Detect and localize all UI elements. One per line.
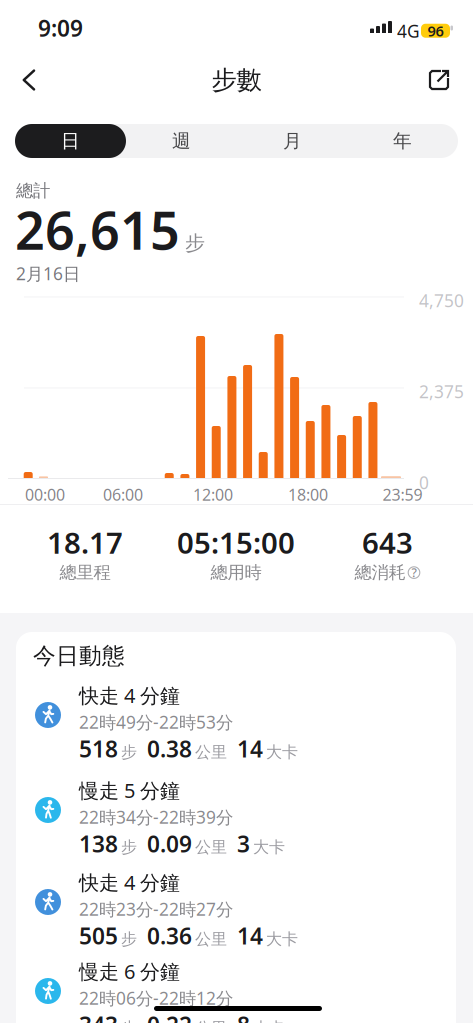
staticText: 總里程 bbox=[59, 562, 110, 583]
staticText: 步數 bbox=[211, 64, 261, 96]
staticText: 大卡 bbox=[253, 837, 285, 857]
staticText: 05:15:00 bbox=[177, 523, 295, 562]
button[interactable]: 月 bbox=[237, 124, 348, 158]
staticText: 22時06分-22時12分 bbox=[79, 987, 233, 1010]
staticText: 週 bbox=[172, 129, 191, 152]
staticText: 26,615 bbox=[15, 195, 180, 264]
button[interactable]: 慢走 5 分鐘 bbox=[35, 775, 459, 859]
staticText: 14 bbox=[237, 921, 263, 951]
staticText: 總用時 bbox=[210, 562, 261, 583]
staticText: 慢走 5 分鐘 bbox=[79, 777, 180, 804]
button[interactable]: 快走 4 分鐘 bbox=[35, 867, 459, 951]
staticText: 快走 4 分鐘 bbox=[79, 869, 180, 896]
staticText: 步 bbox=[121, 929, 137, 949]
staticText: 06:00 bbox=[103, 484, 143, 505]
staticText: 0.09 bbox=[147, 829, 192, 859]
staticText: 2,375 bbox=[419, 380, 464, 403]
staticText: 步 bbox=[121, 1018, 137, 1023]
staticText: 今日動態 bbox=[33, 642, 125, 670]
staticText: 138 bbox=[79, 829, 118, 859]
staticText: 14 bbox=[237, 734, 263, 764]
button[interactable]: 返回 bbox=[0, 60, 56, 100]
staticText: 0 bbox=[419, 471, 429, 494]
staticText: 96 bbox=[427, 21, 443, 40]
staticText: 2月16日 bbox=[16, 262, 80, 285]
staticText: 月 bbox=[283, 129, 302, 152]
staticText: 0.36 bbox=[147, 921, 192, 951]
button[interactable]: 快走 4 分鐘 bbox=[35, 680, 459, 764]
staticText: 步 bbox=[121, 742, 137, 762]
staticText: 518 bbox=[79, 734, 118, 764]
staticText: 年 bbox=[393, 129, 412, 152]
staticText: 22時49分-22時53分 bbox=[79, 711, 233, 734]
staticText: 公里 bbox=[195, 742, 227, 762]
staticText: 12:00 bbox=[193, 484, 233, 505]
staticText: 22時23分-22時27分 bbox=[79, 898, 233, 921]
staticText: 643 bbox=[362, 523, 413, 562]
staticText: 0.38 bbox=[147, 734, 192, 764]
staticText: 總消耗 bbox=[354, 562, 405, 583]
staticText: ? bbox=[411, 565, 416, 580]
staticText: 大卡 bbox=[266, 742, 298, 762]
staticText: 8 bbox=[237, 1010, 250, 1023]
staticText: 4,750 bbox=[419, 289, 464, 312]
staticText: 9:09 bbox=[38, 13, 83, 43]
button[interactable]: 慢走 6 分鐘 bbox=[35, 956, 459, 1023]
button[interactable]: 週 bbox=[126, 124, 237, 158]
staticText: 0.22 bbox=[147, 1010, 192, 1023]
button[interactable]: 日 bbox=[15, 124, 126, 158]
staticText: 總計 bbox=[16, 180, 50, 201]
staticText: 18:00 bbox=[288, 484, 328, 505]
staticText: 步 bbox=[121, 837, 137, 857]
staticText: 18.17 bbox=[47, 523, 123, 562]
staticText: 3 bbox=[237, 829, 250, 859]
staticText: 公里 bbox=[195, 929, 227, 949]
staticText: 公里 bbox=[195, 837, 227, 857]
button[interactable]: 分享 bbox=[419, 60, 459, 100]
staticText: 慢走 6 分鐘 bbox=[79, 958, 180, 985]
staticText: 22時34分-22時39分 bbox=[79, 806, 233, 829]
staticText: 00:00 bbox=[25, 484, 65, 505]
staticText: 大卡 bbox=[253, 1018, 285, 1023]
staticText: 快走 4 分鐘 bbox=[79, 682, 180, 709]
staticText: 步 bbox=[185, 231, 205, 255]
staticText: 日 bbox=[61, 129, 80, 152]
staticText: 505 bbox=[79, 921, 118, 951]
staticText: 4G bbox=[397, 19, 420, 42]
button[interactable]: 年 bbox=[347, 124, 458, 158]
staticText: 23:59 bbox=[382, 484, 422, 505]
staticText: 343 bbox=[79, 1010, 118, 1023]
staticText: 大卡 bbox=[266, 929, 298, 949]
staticText: 公里 bbox=[195, 1018, 227, 1023]
button[interactable]: 總消耗說明 bbox=[407, 566, 420, 579]
